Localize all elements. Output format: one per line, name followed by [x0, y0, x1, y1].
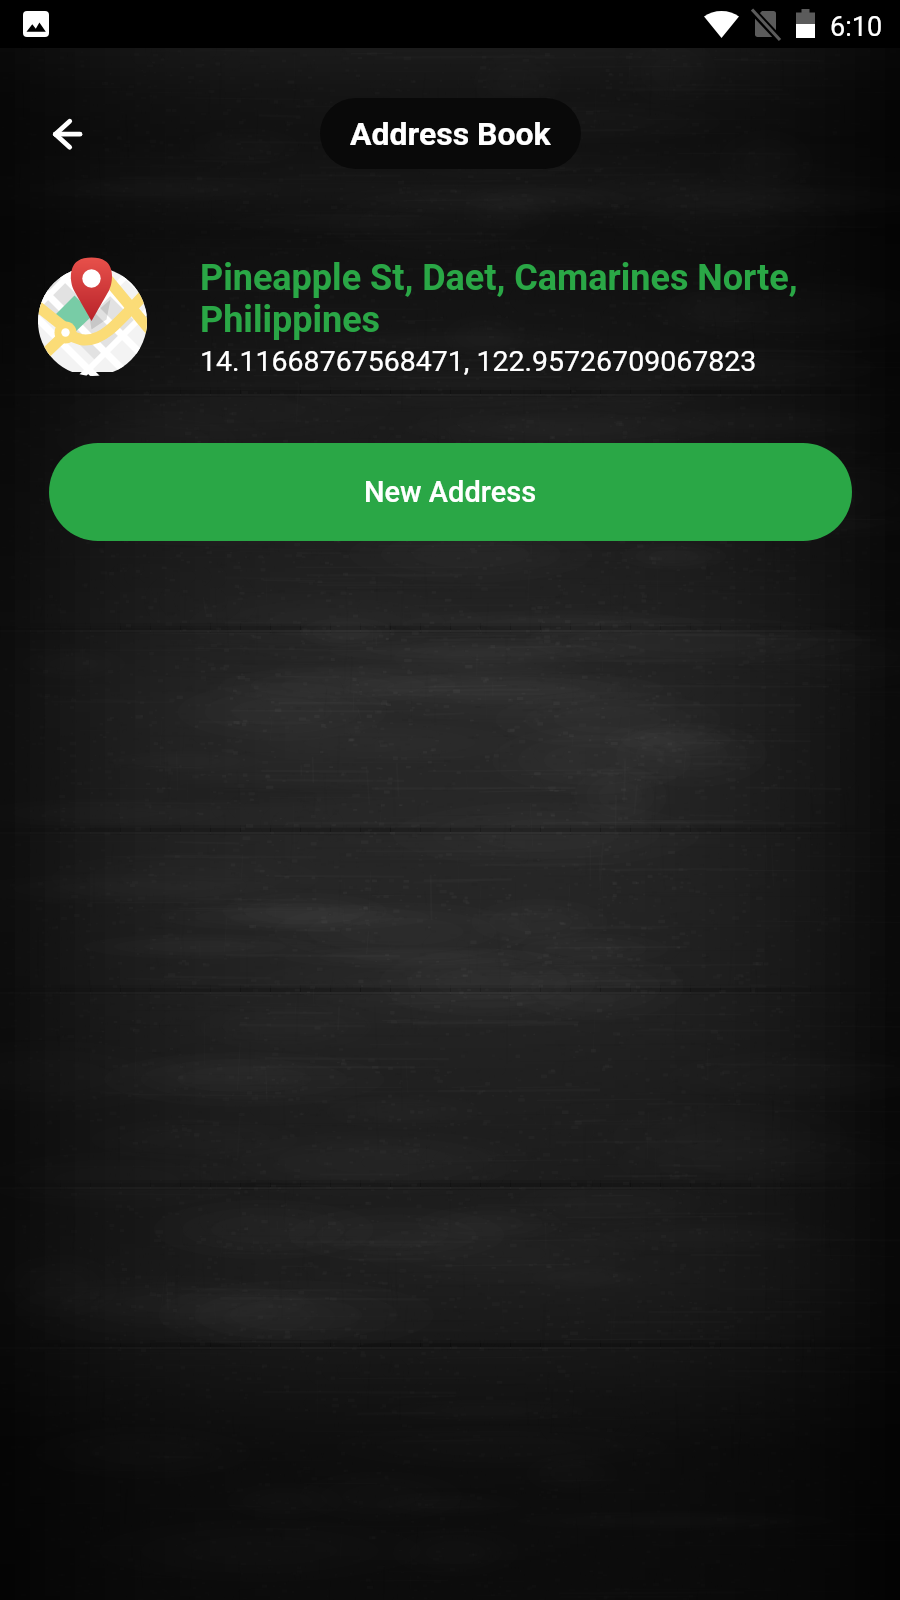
staticText: Pineapple St, Daet, Camarines Norte, Phi…: [200, 257, 840, 341]
button[interactable]: Back: [43, 110, 93, 160]
button[interactable]: Address Book: [320, 98, 581, 169]
staticText: 14.11668767568471, 122.95726709067823: [200, 345, 757, 378]
staticText: Address Book: [350, 115, 551, 153]
staticText: New Address: [364, 475, 537, 509]
button[interactable]: Pineapple St, Daet, Camarines Norte, Phi…: [0, 240, 900, 390]
button[interactable]: New Address: [49, 443, 852, 541]
staticText: 6:10: [830, 11, 883, 43]
